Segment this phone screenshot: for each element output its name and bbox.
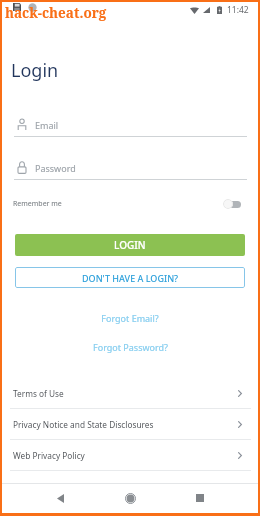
button[interactable]: Web Privacy Policy — [2, 440, 258, 471]
staticText: LOGIN — [114, 238, 146, 252]
button[interactable]: Recents — [188, 486, 212, 510]
button[interactable]: Privacy Notice and State Disclosures — [2, 409, 258, 440]
button[interactable]: Remember me — [223, 198, 241, 210]
button[interactable]: Contact Us — [2, 471, 258, 502]
button[interactable]: Home — [118, 486, 142, 510]
staticText: Email — [35, 119, 59, 131]
button[interactable]: Terms of Use — [2, 378, 258, 409]
staticText: Terms of Use — [13, 388, 64, 399]
staticText: Forgot Password? — [93, 341, 168, 353]
staticText: Forgot Email? — [101, 312, 159, 324]
staticText: Password — [35, 162, 76, 174]
button[interactable]: Forgot Password? — [2, 341, 258, 353]
staticText: Remember me — [13, 199, 62, 209]
staticText: Privacy Notice and State Disclosures — [13, 419, 154, 430]
staticText: 11:42 — [227, 4, 249, 16]
staticText: hack-cheat.org — [5, 4, 107, 22]
button[interactable]: LOGIN — [15, 234, 245, 256]
button[interactable]: Forgot Email? — [2, 312, 258, 324]
staticText: Login — [11, 58, 59, 83]
staticText: Web Privacy Policy — [13, 450, 85, 461]
button[interactable]: DON'T HAVE A LOGIN? — [15, 267, 245, 288]
staticText: DON'T HAVE A LOGIN? — [82, 272, 179, 284]
staticText: Contact Us — [13, 481, 56, 492]
button[interactable]: Back — [48, 486, 72, 510]
